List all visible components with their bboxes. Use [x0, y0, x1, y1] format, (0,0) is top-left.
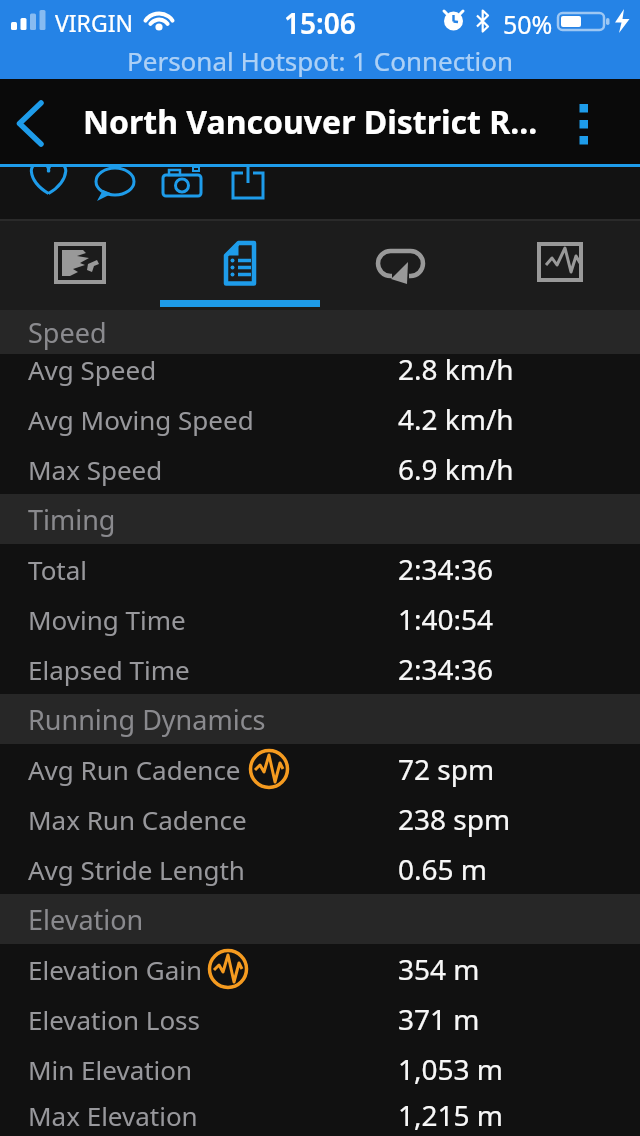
staticText: Max Elevation	[28, 1098, 198, 1133]
staticText: 1:40:54	[398, 600, 494, 638]
staticText: Speed	[28, 314, 107, 351]
staticText: Min Elevation	[28, 1052, 193, 1087]
staticText: 4.2 km/h	[398, 400, 514, 438]
button[interactable]	[320, 221, 480, 310]
button[interactable]: Max Elevation	[0, 1094, 640, 1136]
button[interactable]: Max Run Cadence	[0, 794, 640, 844]
staticText: Moving Time	[28, 602, 186, 637]
button[interactable]	[0, 221, 160, 310]
staticText: VIRGIN	[55, 7, 133, 38]
staticText: Personal Hotspot: 1 Connection	[127, 43, 514, 78]
button[interactable]: Avg Moving Speed	[0, 394, 640, 444]
button[interactable]	[480, 221, 640, 310]
button[interactable]	[226, 167, 276, 219]
staticText: 2:34:36	[398, 650, 494, 688]
button[interactable]: Elevation Loss	[0, 994, 640, 1044]
staticText: Running Dynamics	[28, 701, 266, 738]
button[interactable]: Avg Run Cadence	[0, 744, 640, 794]
staticText: Elapsed Time	[28, 652, 190, 687]
staticText: Elevation	[28, 901, 144, 938]
button[interactable]	[160, 221, 320, 310]
staticText: 371 m	[398, 1000, 480, 1038]
button[interactable]: Min Elevation	[0, 1044, 640, 1094]
button[interactable]: Moving Time	[0, 594, 640, 644]
staticText: 354 m	[398, 950, 480, 988]
button[interactable]	[0, 79, 64, 164]
staticText: 50%	[503, 7, 553, 41]
button[interactable]	[90, 167, 140, 219]
staticText: Avg Moving Speed	[28, 402, 254, 437]
button[interactable]: Max Speed	[0, 444, 640, 494]
staticText: 72 spm	[398, 750, 495, 788]
staticText: Elevation Gain	[28, 952, 203, 987]
staticText: North Vancouver District R...	[83, 100, 538, 144]
staticText: 15:06	[284, 4, 356, 42]
button[interactable]: Elevation Gain	[0, 944, 640, 994]
button[interactable]: Avg Stride Length	[0, 844, 640, 894]
staticText: 238 spm	[398, 800, 511, 838]
staticText: Timing	[28, 501, 116, 538]
staticText: Avg Speed	[28, 352, 157, 387]
staticText: Avg Stride Length	[28, 852, 245, 887]
staticText: 0.65 m	[398, 850, 488, 888]
button[interactable]: Total	[0, 544, 640, 594]
staticText: Avg Run Cadence	[28, 752, 241, 787]
button[interactable]: Avg Speed	[0, 344, 640, 394]
staticText: 1,053 m	[398, 1050, 504, 1088]
button[interactable]	[570, 79, 640, 164]
button[interactable]	[158, 167, 208, 219]
staticText: 2.8 km/h	[398, 350, 514, 388]
staticText: Elevation Loss	[28, 1002, 201, 1037]
staticText: Max Run Cadence	[28, 802, 247, 837]
staticText: Max Speed	[28, 452, 163, 487]
staticText: 2:34:36	[398, 550, 494, 588]
staticText: 1,215 m	[398, 1096, 504, 1134]
staticText: Total	[28, 552, 88, 587]
staticText: 6.9 km/h	[398, 450, 514, 488]
button[interactable]	[22, 167, 76, 219]
button[interactable]: Elapsed Time	[0, 644, 640, 694]
